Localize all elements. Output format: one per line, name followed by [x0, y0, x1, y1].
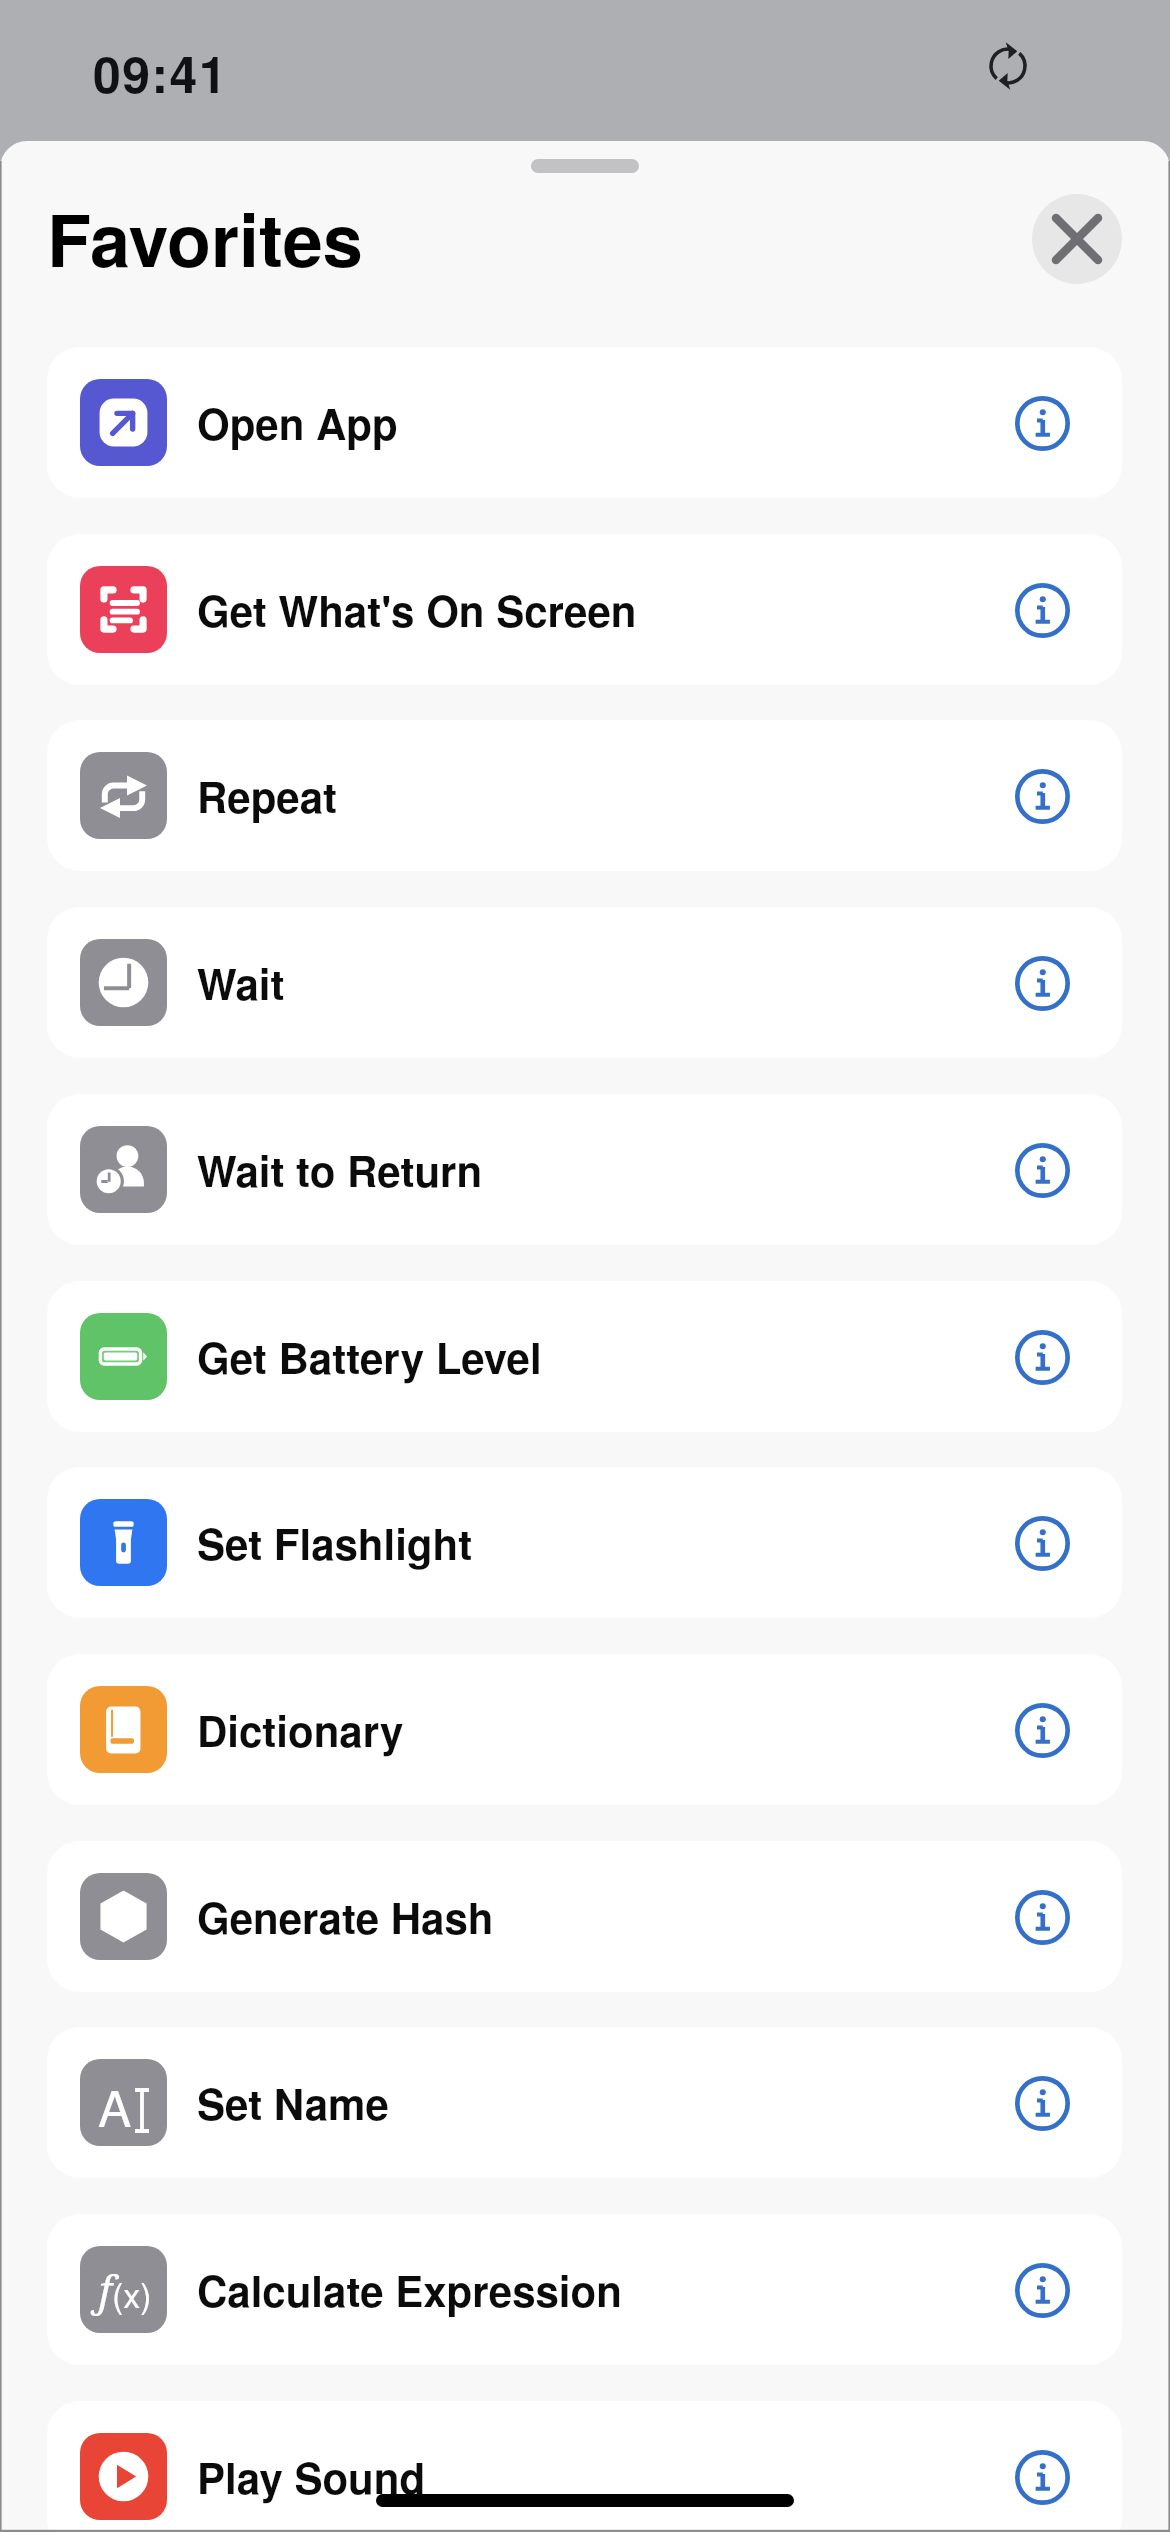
button[interactable]: Info [1005, 1693, 1079, 1767]
button[interactable]: Get Battery Level [47, 1281, 1122, 1432]
button[interactable]: Get What's On Screen [47, 534, 1122, 685]
staticText: Generate Hash [197, 1887, 494, 1947]
staticText: Repeat [197, 766, 338, 826]
button[interactable]: Play Sound [47, 2401, 1122, 2532]
button[interactable]: Info [1005, 2066, 1079, 2140]
staticText: Calculate Expression [197, 2260, 622, 2320]
staticText: Get Battery Level [197, 1327, 542, 1387]
button[interactable]: A [47, 2027, 1122, 2178]
staticText: Get What's On Screen [197, 580, 637, 640]
button[interactable]: Wait to Return [47, 1094, 1122, 1245]
staticText: Dictionary [197, 1700, 404, 1760]
button[interactable]: Set Flashlight [47, 1467, 1122, 1618]
button[interactable]: Close [1032, 194, 1122, 284]
button[interactable]: Info [1005, 2253, 1079, 2327]
staticText: Set Name [197, 2073, 389, 2133]
button[interactable]: Info [1005, 573, 1079, 647]
staticText: Wait to Return [197, 1140, 483, 1200]
staticText: Open App [197, 393, 398, 453]
button[interactable]: Info [1005, 1880, 1079, 1954]
button[interactable]: Info [1005, 1133, 1079, 1207]
button[interactable]: Open App [47, 347, 1122, 498]
staticText: Wait [197, 953, 285, 1013]
button[interactable]: Refresh [976, 34, 1040, 98]
staticText: (x) [112, 2269, 152, 2318]
button[interactable]: ƒ [47, 2214, 1122, 2365]
staticText: Play Sound [197, 2447, 426, 2507]
button[interactable]: Dictionary [47, 1654, 1122, 1805]
staticText: Favorites [47, 186, 363, 289]
button[interactable]: Info [1005, 386, 1079, 460]
staticText: Set Flashlight [197, 1513, 473, 1573]
staticText: A [98, 2070, 132, 2142]
button[interactable]: Info [1005, 1320, 1079, 1394]
staticText: ƒ [95, 2261, 112, 2318]
button[interactable]: Info [1005, 946, 1079, 1020]
button[interactable]: Wait [47, 907, 1122, 1058]
button[interactable]: Info [1005, 2440, 1079, 2514]
button[interactable]: Info [1005, 1506, 1079, 1580]
button[interactable]: Repeat [47, 720, 1122, 871]
button[interactable]: Generate Hash [47, 1841, 1122, 1992]
staticText: 09:41 [93, 37, 228, 109]
button[interactable]: Info [1005, 759, 1079, 833]
